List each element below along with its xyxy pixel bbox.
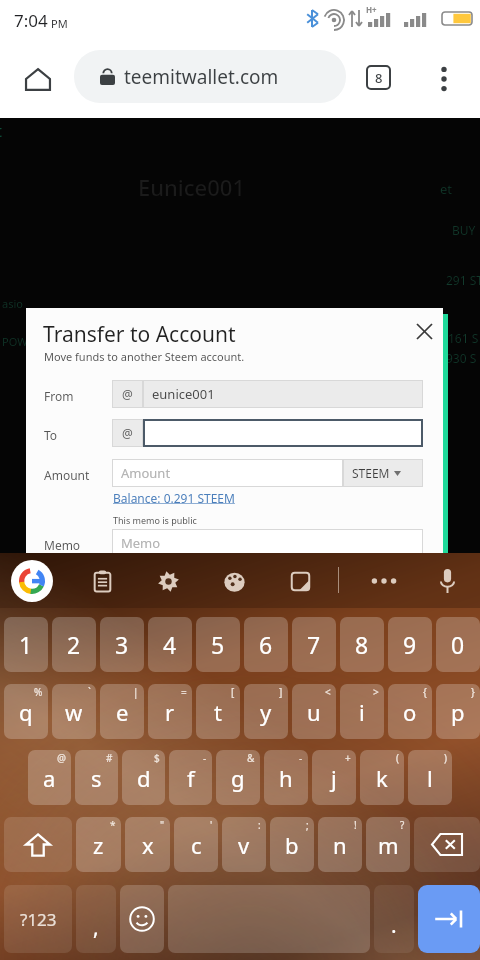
button[interactable]: v: [222, 817, 266, 872]
staticText: 7:04: [14, 9, 48, 32]
button[interactable]: m: [366, 817, 410, 872]
staticText: ": [160, 818, 165, 832]
button[interactable]: Space: [168, 885, 370, 953]
button[interactable]: p: [436, 684, 480, 739]
staticText: Move funds to another Steem account.: [44, 349, 245, 364]
button[interactable]: Shift: [4, 817, 72, 872]
button[interactable]: ?123: [4, 885, 72, 953]
staticText: z: [93, 830, 104, 860]
staticText: Next: [65, 591, 97, 610]
button[interactable]: 4: [148, 617, 192, 672]
staticText: y: [260, 697, 272, 727]
staticText: PM: [51, 16, 68, 31]
button[interactable]: Backspace: [414, 817, 480, 872]
staticText: s: [91, 763, 102, 793]
button[interactable]: Amount: [112, 459, 343, 487]
button[interactable]: g: [216, 750, 260, 805]
button[interactable]: Settings: [150, 563, 186, 599]
button[interactable]: Enter: [418, 885, 480, 953]
staticText: o: [403, 697, 417, 727]
staticText: 1: [19, 629, 33, 660]
staticText: n: [333, 830, 347, 860]
button[interactable]: .: [374, 885, 414, 953]
staticText: -: [203, 751, 207, 765]
staticText: From: [44, 388, 74, 404]
button[interactable]: Close: [405, 312, 443, 350]
staticText: k: [376, 763, 388, 793]
button[interactable]: Emoji: [120, 885, 164, 953]
button[interactable]: u: [292, 684, 336, 739]
button[interactable]: Voice input: [428, 562, 466, 600]
staticText: |: [133, 685, 139, 699]
staticText: ,: [93, 913, 99, 942]
staticText: Transfer to Account: [43, 320, 236, 349]
staticText: et: [440, 180, 453, 198]
staticText: -: [299, 751, 303, 765]
staticText: i: [359, 697, 365, 727]
staticText: q: [19, 697, 33, 727]
staticText: c: [191, 830, 202, 860]
button[interactable]: s: [75, 750, 118, 805]
button[interactable]: x: [125, 817, 170, 872]
staticText: f: [187, 763, 195, 793]
staticText: eunice001: [152, 385, 215, 403]
staticText: e: [116, 697, 129, 727]
button[interactable]: 9: [388, 617, 432, 672]
staticText: STEEM: [352, 465, 390, 481]
button[interactable]: n: [318, 817, 362, 872]
button[interactable]: a: [28, 750, 71, 805]
button[interactable]: q: [4, 684, 48, 739]
staticText: .: [391, 911, 397, 940]
button[interactable]: 1: [4, 617, 48, 672]
button[interactable]: h: [264, 750, 308, 805]
button[interactable]: y: [244, 684, 288, 739]
button[interactable]: Home: [14, 55, 62, 103]
button[interactable]: Balance: 0.291 STEEM: [113, 490, 235, 506]
button[interactable]: w: [52, 684, 96, 739]
button[interactable]: 3: [100, 617, 144, 672]
button[interactable]: 7: [292, 617, 336, 672]
staticText: teemitwallet.com: [124, 64, 279, 90]
staticText: ': [210, 818, 213, 832]
button[interactable]: c: [174, 817, 218, 872]
button[interactable]: @: [112, 419, 423, 447]
button[interactable]: r: [148, 684, 192, 739]
button[interactable]: e: [100, 684, 144, 739]
staticText: @: [122, 425, 133, 441]
button[interactable]: STEEM: [343, 459, 423, 487]
button[interactable]: teemitwallet.com: [74, 50, 346, 103]
button[interactable]: Theme: [216, 563, 252, 599]
button[interactable]: o: [388, 684, 432, 739]
button[interactable]: Next: [45, 582, 116, 619]
button[interactable]: 2: [52, 617, 96, 672]
button[interactable]: i: [340, 684, 384, 739]
button[interactable]: d: [122, 750, 165, 805]
staticText: 161 S: [448, 330, 479, 346]
button[interactable]: Tabs: [360, 59, 396, 95]
button[interactable]: 5: [196, 617, 240, 672]
staticText: p: [451, 697, 465, 727]
staticText: 9: [403, 629, 417, 660]
button[interactable]: More options: [420, 55, 468, 103]
staticText: BUY: [452, 222, 476, 238]
button[interactable]: Resize keyboard: [282, 563, 318, 599]
staticText: <: [325, 685, 331, 699]
button[interactable]: z: [76, 817, 121, 872]
button[interactable]: l: [408, 750, 452, 805]
button[interactable]: Memo: [112, 529, 423, 557]
staticText: ;: [306, 818, 309, 832]
button[interactable]: Google search: [11, 560, 53, 602]
button[interactable]: k: [360, 750, 404, 805]
button[interactable]: f: [169, 750, 212, 805]
staticText: a: [43, 763, 56, 793]
button[interactable]: ,: [76, 885, 116, 953]
button[interactable]: 0: [436, 617, 480, 672]
button[interactable]: t: [196, 684, 240, 739]
button[interactable]: Clipboard: [84, 563, 120, 599]
staticText: This memo is public: [113, 514, 197, 526]
button[interactable]: 6: [244, 617, 288, 672]
button[interactable]: More: [362, 566, 406, 596]
button[interactable]: j: [312, 750, 356, 805]
button[interactable]: b: [270, 817, 314, 872]
button[interactable]: 8: [340, 617, 384, 672]
